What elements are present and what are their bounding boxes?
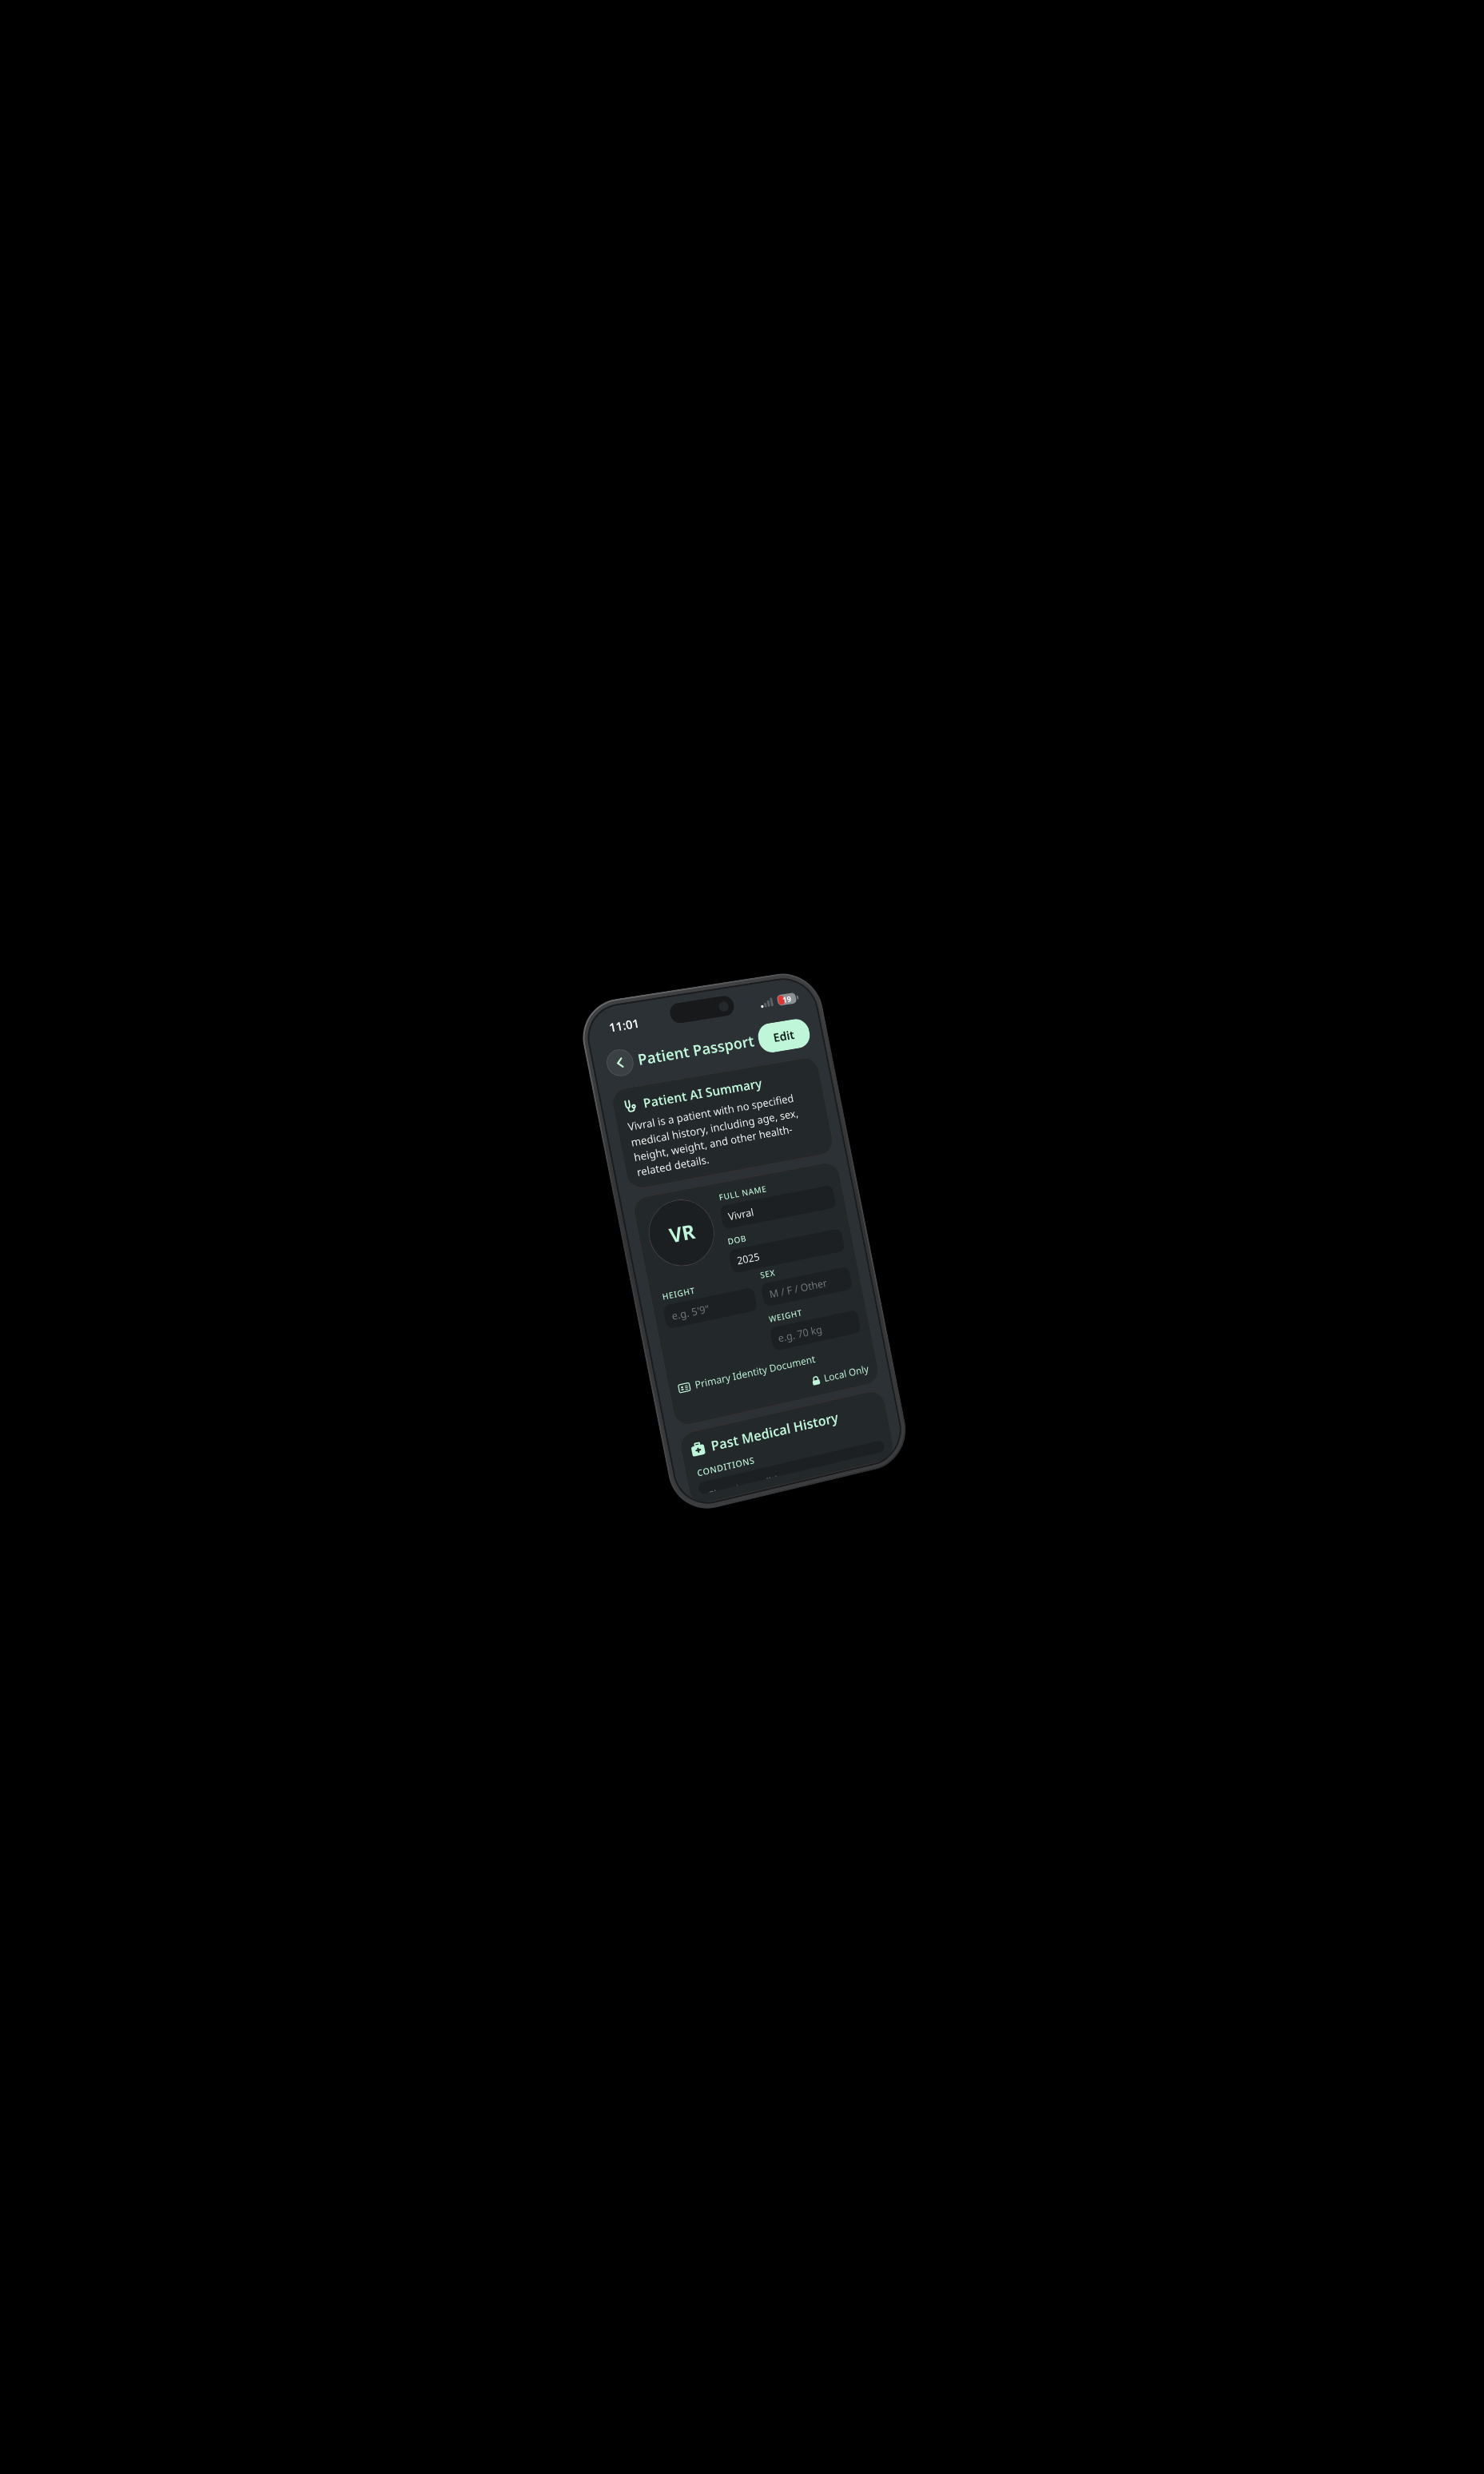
staticText: Past Medical History [709,1408,840,1455]
staticText: e.g. 70 kg [777,1322,823,1345]
staticText: e.g. 5'9" [670,1301,711,1323]
button[interactable]: Edit [756,1017,812,1054]
staticText: Patient AI Summary [642,1074,764,1112]
staticText: Chronic conditions... [707,1466,802,1493]
staticText: CONDITIONS [696,1454,756,1479]
button[interactable]: M / F / Other [760,1266,853,1307]
button[interactable]: Primary Identity Document [678,1352,817,1395]
button[interactable]: Back [604,1047,636,1078]
staticText: HEIGHT [661,1285,697,1302]
button[interactable]: 2025 [728,1228,845,1274]
staticText: DOB [727,1233,748,1247]
staticText: WEIGHT [768,1307,804,1325]
staticText: M / F / Other [768,1276,829,1301]
staticText: Patient Passport [636,1031,756,1070]
staticText: Local Only [823,1362,870,1385]
staticText: Primary Identity Document [694,1352,817,1392]
staticText: FULL NAME [718,1183,768,1203]
staticText: 11:01 [608,1015,641,1035]
button[interactable]: Patient AI Summary [610,1055,836,1191]
staticText: 19 [782,993,793,1005]
button[interactable]: Vivral [719,1185,837,1229]
staticText: 2025 [736,1249,761,1268]
button[interactable]: e.g. 5'9" [662,1287,758,1329]
button[interactable]: Chronic conditions... [698,1440,885,1495]
staticText: Edit [772,1026,796,1045]
staticText: VR [667,1217,697,1249]
button[interactable]: Patient avatar [643,1194,720,1272]
staticText: SEX [759,1267,776,1281]
staticText: Vivral [727,1205,755,1224]
button[interactable]: e.g. 70 kg [769,1309,862,1351]
staticText: Vivral is a patient with no specified me… [627,1088,824,1179]
